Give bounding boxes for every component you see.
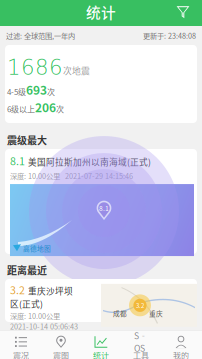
staticText: 区(正式)	[10, 297, 43, 310]
staticText: 8.1	[99, 203, 109, 213]
staticText: 1686	[7, 55, 63, 80]
staticText: 深度: 10.00公里	[10, 170, 60, 181]
staticText: 206	[35, 98, 56, 116]
staticText: 高德地图	[23, 243, 51, 253]
staticText: 我的	[173, 349, 189, 359]
staticText: 美国阿拉斯加州以南海域(正式)	[28, 155, 151, 168]
staticText: 更新于: 23:48:08	[143, 30, 196, 41]
staticText: 震级最大	[7, 133, 47, 147]
button[interactable]: 筛选	[170, 0, 196, 25]
staticText: 2021-10-14 05:06:43	[10, 321, 78, 332]
staticText: 统计	[86, 1, 116, 23]
button[interactable]: SOS	[121, 330, 161, 359]
staticText: 重庆	[149, 308, 163, 318]
button[interactable]: 3.2	[5, 279, 197, 322]
staticText: 4-5级	[7, 86, 26, 97]
staticText: 3.2	[136, 301, 144, 310]
staticText: 次	[47, 86, 55, 97]
staticText: 693	[26, 81, 47, 98]
staticText: 次	[56, 103, 64, 115]
staticText: 成都	[113, 308, 127, 318]
staticText: 2021-07-29 14:15:46	[65, 170, 133, 181]
staticText: 次地震	[63, 64, 90, 77]
button[interactable]: 震图	[41, 330, 81, 359]
staticText: 震图	[53, 349, 69, 359]
staticText: 统计	[93, 349, 109, 359]
staticText: 8.1	[10, 153, 25, 168]
staticText: 3.2	[10, 282, 25, 297]
staticText: 深度: 10.00公里	[10, 310, 60, 321]
staticText: 重庆沙坪坝	[28, 284, 73, 297]
staticText: 距离最近	[7, 263, 47, 277]
staticText: 6级以上	[7, 103, 35, 115]
staticText: 过滤: 全球范围,一年内	[6, 30, 75, 41]
button[interactable]: 统计	[81, 330, 121, 359]
staticText: 震况	[13, 349, 29, 359]
staticText: SOS	[134, 329, 148, 354]
button[interactable]: 1686	[5, 45, 197, 123]
button[interactable]: 震况	[1, 330, 41, 359]
button[interactable]: 我的	[161, 330, 201, 359]
staticText: 工具	[133, 349, 149, 359]
button[interactable]: 8.1	[5, 149, 197, 254]
